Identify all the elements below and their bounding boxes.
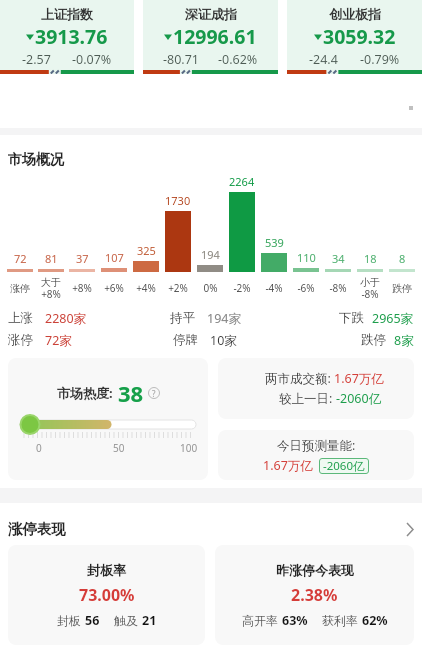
button[interactable]: 创业板指 <box>287 0 422 74</box>
staticText: 两市成交额: <box>265 370 331 387</box>
staticText: 3059.32 <box>323 23 396 50</box>
staticText: 1.67万亿 <box>334 370 384 387</box>
button[interactable]: 深证成指 <box>143 0 278 74</box>
staticText: 涨停表现 <box>8 520 66 538</box>
staticText: 小于 -8% <box>360 276 380 300</box>
staticText: 539 <box>265 235 284 250</box>
staticText: 72 <box>14 251 27 266</box>
staticText: 市场热度: <box>57 384 113 402</box>
staticText: -0.62% <box>218 51 258 68</box>
staticText: +6% <box>104 281 124 295</box>
staticText: 封板率 <box>87 562 126 578</box>
staticText: 110 <box>297 250 316 265</box>
staticText: -8% <box>329 281 347 295</box>
staticText: -0.07% <box>72 51 112 68</box>
button[interactable]: 市场热度: <box>8 358 208 480</box>
staticText: 100 <box>180 441 198 455</box>
staticText: -2% <box>233 281 251 295</box>
staticText: 50 <box>113 441 125 455</box>
staticText: 194 <box>201 247 220 262</box>
staticText: 34 <box>332 251 345 266</box>
staticText: 8家 <box>394 332 414 349</box>
staticText: 下跌 <box>339 310 364 326</box>
staticText: 高开率 <box>242 613 278 628</box>
staticText: 跌停 <box>392 282 412 295</box>
staticText: 3913.76 <box>35 23 108 50</box>
staticText: ? <box>152 388 156 399</box>
staticText: 市场概况 <box>8 151 64 169</box>
staticText: 12996.61 <box>173 23 257 50</box>
staticText: 大于 +8% <box>41 276 61 300</box>
staticText: 上证指数 <box>41 6 93 22</box>
staticText: +2% <box>168 281 188 295</box>
staticText: 325 <box>137 243 156 258</box>
staticText: 81 <box>45 251 58 266</box>
staticText: 2.38% <box>291 584 338 606</box>
staticText: 封板 <box>57 613 81 628</box>
staticText: 停牌 <box>173 332 198 348</box>
staticText: 2965家 <box>372 310 414 327</box>
button[interactable]: 涨停表现 <box>8 520 414 538</box>
staticText: 62% <box>362 612 388 629</box>
staticText: 昨涨停今表现 <box>276 562 354 578</box>
staticText: 37 <box>76 251 89 266</box>
staticText: 18 <box>364 251 377 266</box>
staticText: -80.71 <box>163 51 199 68</box>
button[interactable]: 封板率 <box>8 545 205 645</box>
staticText: -0.79% <box>360 51 400 68</box>
staticText: +4% <box>136 281 156 295</box>
staticText: -6% <box>297 281 315 295</box>
staticText: 1.67万亿 <box>263 457 313 474</box>
button[interactable]: 上证指数 <box>0 0 134 74</box>
staticText: 0% <box>203 281 218 295</box>
staticText: +8% <box>72 281 92 295</box>
staticText: 21 <box>142 612 157 629</box>
staticText: 194家 <box>207 310 241 327</box>
staticText: -2060亿 <box>323 458 365 474</box>
staticText: 38 <box>118 378 144 408</box>
staticText: 今日预测量能: <box>277 437 356 454</box>
staticText: 0 <box>36 441 42 455</box>
staticText: -2.57 <box>22 51 51 68</box>
staticText: 56 <box>85 612 100 629</box>
staticText: 72家 <box>45 332 72 349</box>
staticText: 较上一日: <box>279 390 333 407</box>
button[interactable]: 昨涨停今表现 <box>215 545 414 645</box>
staticText: 73.00% <box>79 584 135 606</box>
staticText: 涨停 <box>10 282 30 295</box>
staticText: -4% <box>265 281 283 295</box>
staticText: -2060亿 <box>336 390 382 407</box>
staticText: 63% <box>282 612 308 629</box>
staticText: 跌停 <box>361 332 386 348</box>
staticText: 持平 <box>170 310 195 326</box>
button[interactable]: 今日预测量能: <box>218 430 414 480</box>
staticText: 触及 <box>114 613 138 628</box>
staticText: 2264 <box>229 174 255 189</box>
staticText: 上涨 <box>8 310 33 326</box>
button[interactable]: 两市成交额: <box>218 358 414 419</box>
staticText: 2280家 <box>45 310 87 327</box>
staticText: -24.4 <box>309 51 338 68</box>
staticText: 获利率 <box>322 613 358 628</box>
staticText: 创业板指 <box>329 6 381 22</box>
staticText: 涨停 <box>8 332 33 348</box>
staticText: 10家 <box>210 332 237 349</box>
staticText: 深证成指 <box>185 6 237 22</box>
staticText: 8 <box>399 251 406 266</box>
staticText: 1730 <box>165 193 191 208</box>
staticText: 107 <box>105 250 124 265</box>
